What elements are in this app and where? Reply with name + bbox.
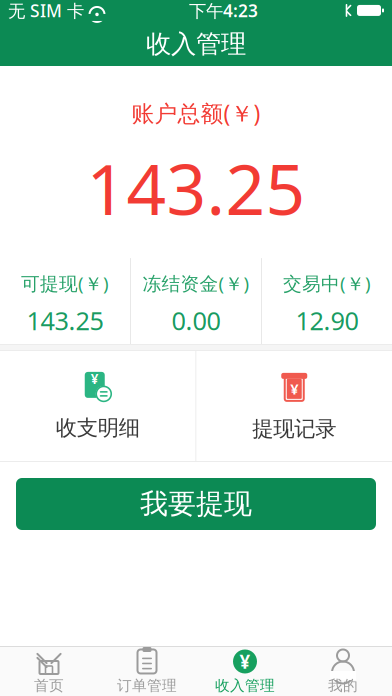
staticText: 账户总额(￥): [131, 98, 260, 128]
button[interactable]: ¥: [196, 351, 392, 461]
staticText: ¥: [91, 370, 99, 388]
button[interactable]: ¥: [196, 647, 294, 696]
staticText: ¥: [239, 649, 250, 674]
staticText: 我要提现: [140, 487, 252, 521]
staticText: 冻结资金(￥): [142, 271, 249, 296]
staticText: 143.25: [26, 304, 103, 337]
staticText: 可提现(￥): [21, 271, 109, 296]
button[interactable]: 订单管理: [98, 647, 196, 696]
staticText: 下午4:23: [189, 0, 258, 22]
staticText: 交易中(￥): [283, 271, 371, 296]
staticText: 0.00: [171, 304, 220, 337]
staticText: 提现记录: [252, 416, 336, 442]
staticText: 我的: [328, 676, 358, 694]
staticText: 143.25: [86, 142, 305, 234]
button[interactable]: 我要提现: [16, 478, 376, 530]
staticText: 订单管理: [117, 676, 177, 694]
staticText: 无 SIM 卡: [8, 0, 84, 22]
button[interactable]: ¥: [0, 351, 195, 461]
button[interactable]: 首页: [0, 647, 98, 696]
staticText: 首页: [34, 676, 64, 694]
staticText: 12.90: [295, 304, 358, 337]
staticText: 收入管理: [146, 28, 246, 59]
button[interactable]: 我的: [294, 647, 392, 696]
staticText: ¥: [290, 379, 298, 399]
staticText: 收支明细: [56, 415, 140, 441]
staticText: 收入管理: [215, 676, 275, 694]
